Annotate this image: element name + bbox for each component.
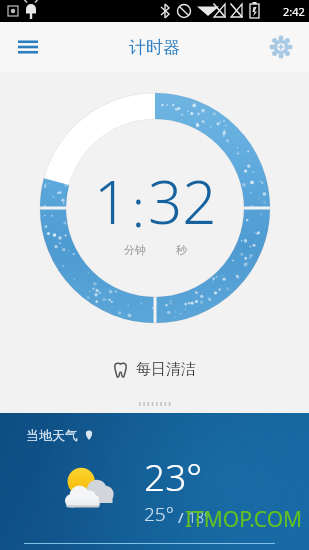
staticText: 分钟 [124, 243, 146, 257]
staticText: 1 [94, 160, 129, 242]
staticText: 23° [144, 451, 203, 501]
staticText: 秒 [176, 243, 187, 257]
staticText: 32 [148, 160, 217, 242]
button[interactable]: 当地天气 [0, 413, 309, 550]
button[interactable]: Menu [8, 27, 48, 67]
button[interactable]: 每日清洁 [105, 356, 204, 383]
staticText: 计时器 [129, 37, 180, 58]
staticText: / [174, 507, 188, 527]
staticText: 2:42 [283, 4, 305, 19]
staticText: 25° [144, 501, 174, 527]
staticText: 18° [188, 508, 210, 527]
staticText: ITMOP.COM [185, 505, 303, 534]
staticText: 当地天气 [26, 427, 78, 443]
button[interactable]: Settings [261, 27, 301, 67]
staticText: 每日清洁 [136, 360, 196, 379]
staticText: : [132, 171, 145, 242]
